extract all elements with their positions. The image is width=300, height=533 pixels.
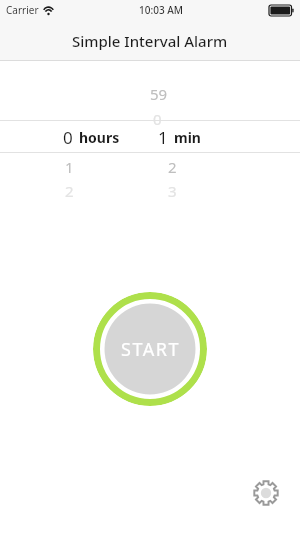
staticText: 0 (153, 109, 162, 129)
staticText: Simple Interval Alarm (72, 31, 228, 51)
staticText: 10:03 AM (139, 3, 183, 17)
staticText: 1 (158, 126, 168, 149)
staticText: 2 (168, 157, 177, 177)
staticText: min (174, 128, 201, 147)
staticText: hours (79, 128, 120, 147)
button[interactable]: Settings (248, 475, 284, 511)
button[interactable]: START (93, 292, 207, 406)
staticText: START (121, 337, 180, 362)
staticText: 2 (65, 181, 74, 201)
staticText: Carrier (6, 3, 39, 17)
staticText: 0 (63, 126, 73, 149)
staticText: 1 (65, 157, 74, 177)
staticText: 3 (168, 181, 177, 201)
staticText: 59 (150, 84, 168, 104)
button[interactable]: 0 (0, 125, 300, 149)
